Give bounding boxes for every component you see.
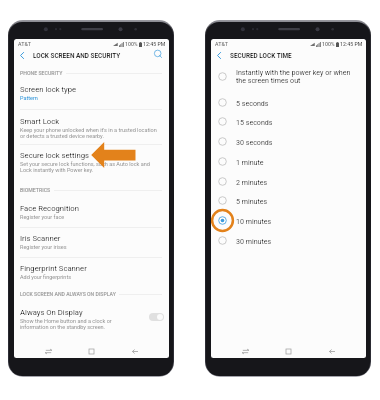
staticText: 1 minute (236, 158, 264, 166)
staticText: Face Recognition (20, 204, 79, 213)
staticText: Register your face (20, 214, 65, 220)
staticText: 30 minutes (236, 237, 272, 245)
button[interactable]: Recent apps (40, 343, 57, 358)
button[interactable]: Screen lock type (14, 85, 169, 107)
staticText: 5 minutes (236, 197, 268, 205)
staticText: SECURED LOCK TIME (230, 52, 292, 60)
button[interactable]: 2 minutes (211, 172, 366, 191)
button[interactable]: 30 minutes (211, 231, 366, 250)
button[interactable]: Navigate up (213, 49, 226, 62)
button[interactable]: Always On Display (14, 308, 169, 335)
button[interactable]: Home (280, 343, 297, 358)
staticText: Add your fingerprints (20, 274, 72, 280)
staticText: Pattern (20, 95, 38, 101)
button[interactable]: Navigate up (16, 49, 29, 62)
staticText: LOCK SCREEN AND ALWAYS ON DISPLAY (20, 291, 116, 297)
staticText: 2 minutes (236, 178, 268, 186)
button[interactable]: Smart Lock (14, 117, 169, 144)
staticText: Set your secure lock functions, such as … (20, 161, 150, 173)
button[interactable]: 5 seconds (211, 93, 366, 112)
staticText: Register your irises (20, 244, 67, 250)
staticText: AT&T (215, 41, 229, 47)
staticText: 15 seconds (236, 118, 273, 126)
staticText: Fingerprint Scanner (20, 264, 87, 273)
staticText: Show the Home button and a clock or info… (20, 318, 112, 330)
button[interactable]: 5 minutes (211, 191, 366, 210)
button[interactable]: Back (126, 343, 143, 358)
button[interactable]: Fingerprint Scanner (14, 264, 169, 286)
staticText: LOCK SCREEN AND SECURITY (33, 52, 121, 60)
button[interactable]: Home (83, 343, 100, 358)
staticText: 30 seconds (236, 138, 273, 146)
staticText: AT&T (18, 41, 32, 47)
staticText: Always On Display (20, 308, 83, 317)
button[interactable]: Back (323, 343, 340, 358)
button[interactable]: Recent apps (237, 343, 254, 358)
button[interactable]: Iris Scanner (14, 234, 169, 256)
button[interactable]: Face Recognition (14, 204, 169, 226)
staticText: 12:45 PM (143, 41, 166, 47)
button[interactable]: 15 seconds (211, 112, 366, 131)
staticText: Smart Lock (20, 117, 60, 126)
staticText: Instantly with the power key or when the… (236, 68, 351, 85)
button[interactable]: Instantly with the power key or when the… (211, 64, 366, 89)
staticText: PHONE SECURITY (20, 70, 63, 76)
button[interactable]: Search (152, 48, 165, 61)
staticText: 12:45 PM (340, 41, 363, 47)
staticText: Iris Scanner (20, 234, 61, 243)
staticText: Secure lock settings (20, 151, 89, 160)
staticText: 10 minutes (236, 217, 272, 225)
staticText: BIOMETRICS (20, 187, 51, 193)
staticText: 5 seconds (236, 99, 269, 107)
button[interactable]: 10 minutes (211, 211, 366, 230)
button[interactable]: 1 minute (211, 152, 366, 171)
staticText: Keep your phone unlocked when it's in a … (20, 127, 157, 139)
button[interactable]: 30 seconds (211, 132, 366, 151)
staticText: Screen lock type (20, 85, 77, 94)
staticText: 100% (322, 41, 335, 47)
button[interactable]: Secure lock settings (14, 151, 169, 178)
staticText: 100% (125, 41, 138, 47)
